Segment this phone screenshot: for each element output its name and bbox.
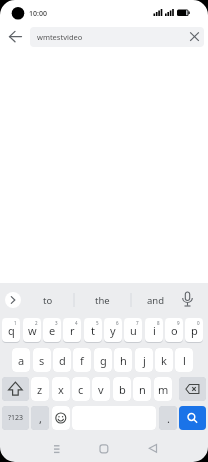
staticText: k	[161, 353, 167, 368]
staticText: s	[39, 353, 45, 368]
staticText: the	[95, 294, 110, 307]
staticText: b	[119, 382, 126, 397]
staticText: 4	[75, 320, 78, 326]
button[interactable]	[2, 377, 29, 401]
staticText: 10:00	[29, 9, 47, 19]
staticText: m	[158, 382, 169, 397]
staticText: 8	[157, 320, 160, 326]
staticText: w	[28, 323, 37, 338]
staticText: p	[191, 323, 198, 338]
button[interactable]: c	[72, 377, 90, 401]
button[interactable]: to	[21, 286, 74, 314]
staticText: g	[100, 353, 107, 368]
button[interactable]	[52, 406, 70, 430]
button[interactable]: d	[53, 348, 71, 372]
button[interactable]	[179, 406, 206, 430]
staticText: i	[153, 323, 156, 338]
staticText: a	[18, 353, 25, 368]
staticText: v	[98, 382, 104, 397]
staticText: ?123	[8, 413, 24, 423]
button[interactable]	[140, 438, 165, 459]
button[interactable]	[44, 438, 69, 459]
button[interactable]: v	[92, 377, 110, 401]
button[interactable]: h	[114, 348, 132, 372]
staticText: 5	[96, 320, 99, 326]
button[interactable]	[185, 28, 204, 47]
button[interactable]: the	[74, 286, 131, 314]
button[interactable]	[179, 377, 206, 401]
button[interactable]: i	[145, 318, 163, 342]
staticText: 7	[136, 320, 139, 326]
staticText: l	[183, 353, 186, 368]
staticText: 9	[177, 320, 180, 326]
staticText: wmtestvideo	[37, 32, 83, 42]
button[interactable]: q	[2, 318, 20, 342]
staticText: f	[80, 353, 84, 368]
button[interactable]: r	[63, 318, 81, 342]
button[interactable]	[5, 292, 21, 308]
button[interactable]: b	[113, 377, 131, 401]
staticText: h	[120, 353, 127, 368]
button[interactable]: t	[84, 318, 102, 342]
staticText: q	[8, 323, 15, 338]
button[interactable]: s	[33, 348, 51, 372]
staticText: 3	[55, 320, 58, 326]
button[interactable]: e	[43, 318, 61, 342]
staticText: t	[91, 323, 95, 338]
staticText: j	[143, 353, 146, 368]
button[interactable]: g	[94, 348, 112, 372]
button[interactable]: wmtestvideo	[30, 27, 204, 47]
staticText: 6	[116, 320, 119, 326]
staticText: and	[147, 294, 165, 307]
button[interactable]: k	[155, 348, 173, 372]
staticText: e	[49, 323, 56, 338]
button[interactable]: y	[104, 318, 122, 342]
staticText: c	[78, 382, 84, 397]
button[interactable]: a	[12, 348, 30, 372]
staticText: n	[139, 382, 146, 397]
button[interactable]: ,	[31, 406, 49, 430]
button[interactable]: ?123	[2, 406, 29, 430]
button[interactable]: n	[133, 377, 151, 401]
button[interactable]: z	[31, 377, 49, 401]
staticText: d	[59, 353, 66, 368]
staticText: .	[167, 411, 170, 426]
button[interactable]	[4, 27, 28, 46]
staticText: y	[110, 323, 116, 338]
staticText: 1	[14, 320, 17, 326]
staticText: z	[37, 382, 43, 397]
button[interactable]: and	[133, 286, 179, 314]
staticText: 2	[35, 320, 38, 326]
staticText: o	[171, 323, 178, 338]
staticText: to	[43, 294, 53, 307]
staticText: x	[58, 382, 64, 397]
button[interactable]: x	[52, 377, 70, 401]
button[interactable]: j	[135, 348, 153, 372]
button[interactable]	[91, 438, 116, 459]
staticText: u	[130, 323, 137, 338]
staticText: 0	[197, 320, 200, 326]
button[interactable]: p	[185, 318, 203, 342]
button[interactable]: w	[23, 318, 41, 342]
button[interactable]: l	[175, 348, 193, 372]
button[interactable]: f	[73, 348, 91, 372]
button[interactable]: o	[165, 318, 183, 342]
staticText: ,	[39, 411, 42, 426]
button[interactable]: u	[124, 318, 142, 342]
button[interactable]: m	[154, 377, 172, 401]
staticText: r	[70, 323, 75, 338]
button[interactable]: .	[159, 406, 177, 430]
